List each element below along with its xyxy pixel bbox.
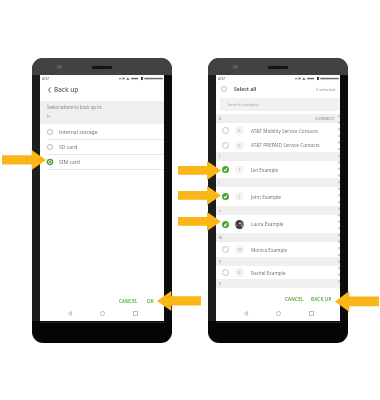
staticText: Back up bbox=[54, 85, 79, 94]
button[interactable]: Recent apps bbox=[127, 306, 144, 321]
button[interactable]: Home bbox=[270, 306, 287, 321]
staticText: Rachel Example bbox=[251, 270, 286, 276]
staticText: AT&T bbox=[42, 77, 50, 81]
staticText: AT&T PREPAID Service Contacts bbox=[251, 142, 320, 148]
staticText: AT&T Mobility Service Contacts bbox=[251, 128, 319, 134]
staticText: S bbox=[219, 282, 221, 286]
staticText: Select all bbox=[234, 86, 257, 93]
staticText: SIM card bbox=[59, 159, 80, 166]
button[interactable]: CANCEL bbox=[117, 296, 140, 306]
staticText: I bbox=[239, 167, 241, 172]
button[interactable]: Laura Example bbox=[216, 215, 340, 233]
staticText: CANCEL bbox=[119, 298, 138, 304]
staticText: I bbox=[219, 155, 221, 159]
button[interactable]: SIM card bbox=[40, 155, 164, 169]
staticText: J bbox=[239, 194, 241, 199]
staticText: L bbox=[219, 209, 221, 213]
staticText: M bbox=[219, 236, 222, 240]
staticText: AT&T bbox=[218, 77, 226, 81]
staticText: J bbox=[219, 181, 220, 185]
button[interactable]: R bbox=[216, 266, 340, 279]
button[interactable]: Back bbox=[61, 306, 78, 321]
button[interactable]: Back bbox=[237, 306, 254, 321]
button[interactable]: Internal storage bbox=[40, 125, 164, 139]
button[interactable]: Search contacts bbox=[220, 98, 340, 111]
other: Alphabet index bbox=[336, 113, 342, 285]
staticText: Internal storage bbox=[59, 129, 98, 136]
staticText: A bbox=[238, 143, 241, 148]
staticText: 4 CONTACTS bbox=[315, 117, 334, 121]
staticText: Ian Example bbox=[251, 167, 279, 173]
staticText: A bbox=[219, 117, 222, 121]
button[interactable]: OK bbox=[145, 296, 156, 306]
button[interactable]: SD card bbox=[40, 140, 164, 154]
staticText: Search contacts bbox=[228, 102, 259, 108]
button[interactable]: J bbox=[216, 187, 340, 206]
button[interactable]: BACK UP bbox=[309, 294, 334, 304]
button[interactable]: M bbox=[216, 242, 340, 257]
button[interactable]: Recent apps bbox=[303, 306, 320, 321]
staticText: Pr bbox=[47, 115, 51, 119]
staticText: Laura Example bbox=[251, 221, 284, 227]
staticText: R bbox=[238, 270, 241, 275]
staticText: R bbox=[219, 260, 221, 264]
staticText: OK bbox=[147, 298, 154, 304]
staticText: John Example bbox=[251, 194, 281, 200]
staticText: Select where to back up to: bbox=[47, 104, 103, 110]
button[interactable]: I bbox=[216, 161, 340, 178]
button[interactable]: CANCEL bbox=[283, 294, 306, 304]
staticText: BACK UP bbox=[311, 296, 332, 302]
staticText: A bbox=[238, 128, 241, 133]
staticText: Monica Example bbox=[251, 247, 288, 253]
staticText: M bbox=[238, 247, 242, 252]
button[interactable]: Home bbox=[94, 306, 111, 321]
button[interactable]: Select all bbox=[216, 82, 340, 96]
staticText: CANCEL bbox=[285, 296, 304, 302]
button[interactable]: A bbox=[216, 123, 340, 138]
staticText: SD card bbox=[59, 144, 78, 151]
staticText: 0 selected bbox=[316, 87, 335, 92]
button[interactable]: A bbox=[216, 138, 340, 152]
button[interactable]: Navigate up bbox=[45, 86, 53, 94]
